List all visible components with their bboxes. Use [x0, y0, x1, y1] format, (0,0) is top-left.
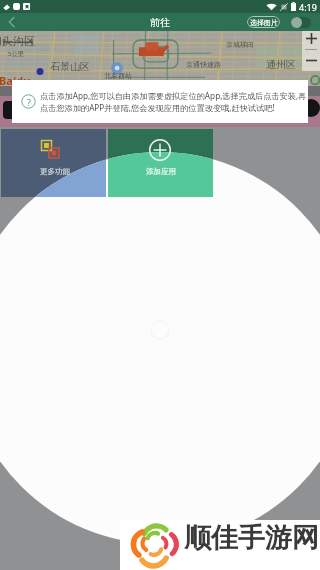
button[interactable]: Toggle [291, 17, 311, 28]
staticText: 北京西站 [104, 71, 132, 80]
button[interactable]: 添加应用 [108, 129, 213, 197]
staticText: 京城梯田 [226, 40, 254, 49]
staticText: 添加应用 [146, 167, 176, 176]
button[interactable]: Zoom out [302, 50, 320, 71]
staticText: 石景山区 [50, 60, 90, 73]
staticText: 4:19 [299, 1, 317, 13]
button[interactable]: 更多功能 [1, 129, 106, 197]
staticText: 点击添加App,您可以自由添加需要虚拟定位的App,选择完成后点击安装,再点击您… [40, 90, 308, 114]
staticText: 顺佳手游网 [184, 521, 319, 555]
button[interactable]: 更多功能 [1, 129, 106, 197]
staticText: 门头沟区 [0, 34, 35, 48]
button[interactable]: ? [12, 80, 308, 123]
staticText: 前往 [150, 16, 170, 29]
staticText: 通州区 [266, 58, 296, 71]
staticText: 京通快速路 [186, 60, 221, 69]
staticText: 5公里 [8, 50, 24, 58]
button[interactable]: Back [0, 13, 24, 31]
button[interactable]: 添加应用 [108, 129, 213, 197]
staticText: ? [27, 96, 31, 108]
button[interactable]: 选择图片 [247, 16, 280, 28]
button[interactable]: Zoom in [302, 28, 320, 49]
staticText: 更多功能 [40, 167, 70, 176]
staticText: 选择图片 [250, 18, 278, 27]
staticText: Baidu [0, 73, 31, 88]
staticText: 更多功能 [40, 167, 70, 176]
staticText: 添加应用 [146, 167, 176, 176]
